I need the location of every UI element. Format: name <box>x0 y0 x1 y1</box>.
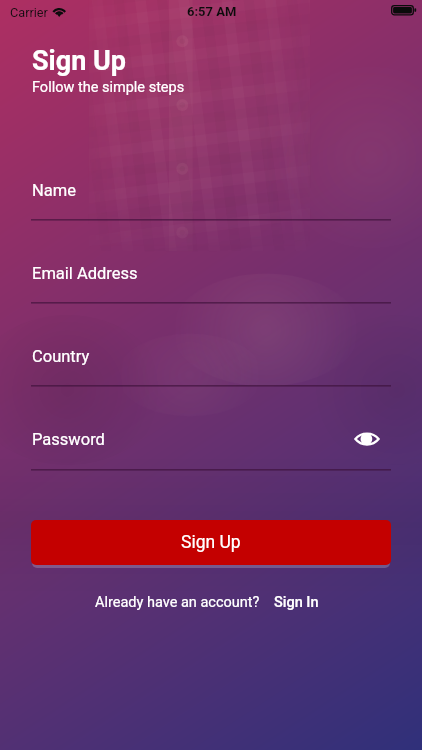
staticText: Sign Up <box>181 532 241 553</box>
staticText: Password <box>32 430 105 449</box>
staticText: Already have an account? <box>95 594 260 611</box>
button[interactable] <box>270 591 322 613</box>
staticText: Carrier <box>10 5 48 20</box>
staticText: Sign Up <box>32 45 127 77</box>
staticText: Sign In <box>274 594 319 611</box>
button[interactable]: Show password <box>351 423 383 455</box>
staticText: 6:57 AM <box>187 4 237 19</box>
staticText: Follow the simple steps <box>32 79 185 96</box>
staticText: Name <box>32 181 76 200</box>
staticText: Country <box>32 347 90 366</box>
button[interactable]: Sign Up <box>31 520 391 565</box>
staticText: Email Address <box>32 264 138 283</box>
